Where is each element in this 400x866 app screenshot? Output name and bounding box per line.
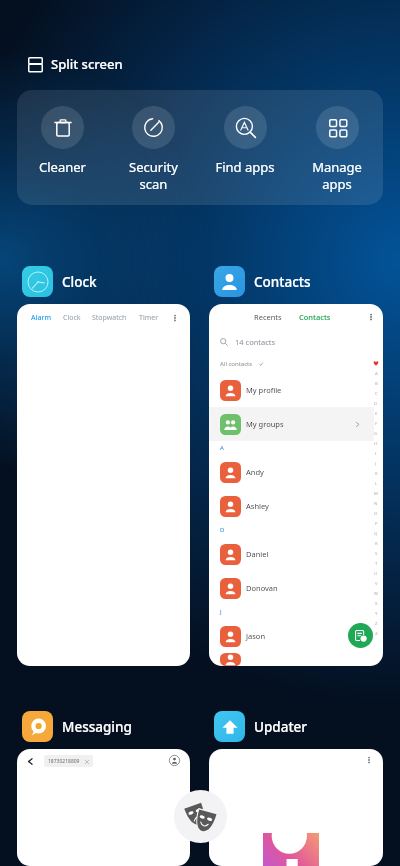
staticText: I xyxy=(375,451,377,457)
button[interactable]: Security scan xyxy=(108,90,199,205)
staticText: V xyxy=(375,581,378,587)
button[interactable]: Manage apps xyxy=(291,90,383,205)
staticText: Security scan xyxy=(129,158,178,193)
staticText: Updater xyxy=(254,718,308,736)
staticText: Contacts xyxy=(254,273,311,291)
staticText: O xyxy=(374,511,378,517)
staticText: M xyxy=(374,491,378,497)
staticText: U xyxy=(374,571,378,577)
button[interactable]: Contacts xyxy=(209,264,311,299)
button[interactable]: Contact info xyxy=(168,754,181,767)
staticText: Timer xyxy=(139,313,159,323)
button[interactable]: Ashley xyxy=(209,489,374,523)
staticText: All contacts xyxy=(220,360,253,368)
button[interactable]: My profile xyxy=(209,373,374,407)
staticText: L xyxy=(375,481,378,487)
staticText: 18730218809 xyxy=(48,758,80,765)
staticText: E xyxy=(375,411,378,417)
staticText: G xyxy=(374,431,378,437)
staticText: A xyxy=(220,444,224,452)
button[interactable]: Back xyxy=(17,749,190,866)
staticText: Manage apps xyxy=(312,158,362,193)
staticText: Recents xyxy=(254,312,282,322)
staticText: Donovan xyxy=(246,583,278,593)
button[interactable]: New contact xyxy=(348,623,373,648)
staticText: Alarm xyxy=(31,313,52,323)
staticText: W xyxy=(374,591,378,597)
staticText: Messaging xyxy=(62,718,132,736)
staticText: H xyxy=(374,441,378,447)
staticText: B xyxy=(375,381,378,387)
staticText: P xyxy=(375,521,378,527)
staticText: D xyxy=(374,401,378,407)
button[interactable]: Donovan xyxy=(209,571,374,605)
staticText: D xyxy=(220,526,225,534)
staticText: Split screen xyxy=(51,55,123,73)
button[interactable]: Daniel xyxy=(209,537,374,571)
staticText: Stopwatch xyxy=(92,313,127,323)
button[interactable]: Updater xyxy=(209,709,308,744)
staticText: Ashley xyxy=(246,501,269,511)
button[interactable]: More options xyxy=(364,755,374,765)
staticText: R xyxy=(375,541,378,547)
staticText: My profile xyxy=(246,385,282,395)
staticText: J xyxy=(220,608,222,616)
staticText: K xyxy=(375,471,378,477)
button[interactable]: Split screen xyxy=(22,51,131,77)
button[interactable]: Find apps xyxy=(199,90,291,205)
staticText: Y xyxy=(375,611,378,617)
staticText: Clock xyxy=(63,313,81,323)
staticText: Contacts xyxy=(299,312,331,322)
staticText: # xyxy=(375,631,378,637)
button[interactable]: Back xyxy=(25,756,35,766)
staticText: Find apps xyxy=(215,158,275,176)
button[interactable]: 18730218809 xyxy=(44,755,93,767)
button[interactable]: Andy xyxy=(209,455,374,489)
button[interactable]: Clock xyxy=(17,264,97,299)
staticText: T xyxy=(375,561,378,567)
button[interactable]: Dual apps xyxy=(174,790,227,843)
staticText: F xyxy=(375,421,378,427)
staticText: Jason xyxy=(246,631,266,641)
button[interactable] xyxy=(209,653,374,666)
button[interactable]: Messaging xyxy=(17,709,132,744)
button[interactable]: My groups xyxy=(209,407,374,441)
staticText: Z xyxy=(375,621,378,627)
staticText: J xyxy=(375,461,377,467)
staticText: Clock xyxy=(62,273,97,291)
button[interactable]: Alarm xyxy=(17,304,190,666)
staticText: Daniel xyxy=(246,549,269,559)
staticText: Cleaner xyxy=(39,158,86,176)
staticText: A xyxy=(375,371,378,377)
button[interactable]: Cleaner xyxy=(17,90,108,205)
button[interactable]: Jason xyxy=(209,619,374,653)
button[interactable]: Recents xyxy=(209,304,383,666)
staticText: Andy xyxy=(246,467,264,477)
staticText: My groups xyxy=(246,419,284,429)
staticText: X xyxy=(375,601,378,607)
staticText: C xyxy=(375,391,378,397)
staticText: Q xyxy=(374,531,378,537)
button[interactable]: More options xyxy=(209,749,383,866)
staticText: 14 contacts xyxy=(235,337,276,347)
staticText: N xyxy=(374,501,378,507)
staticText: S xyxy=(375,551,378,557)
